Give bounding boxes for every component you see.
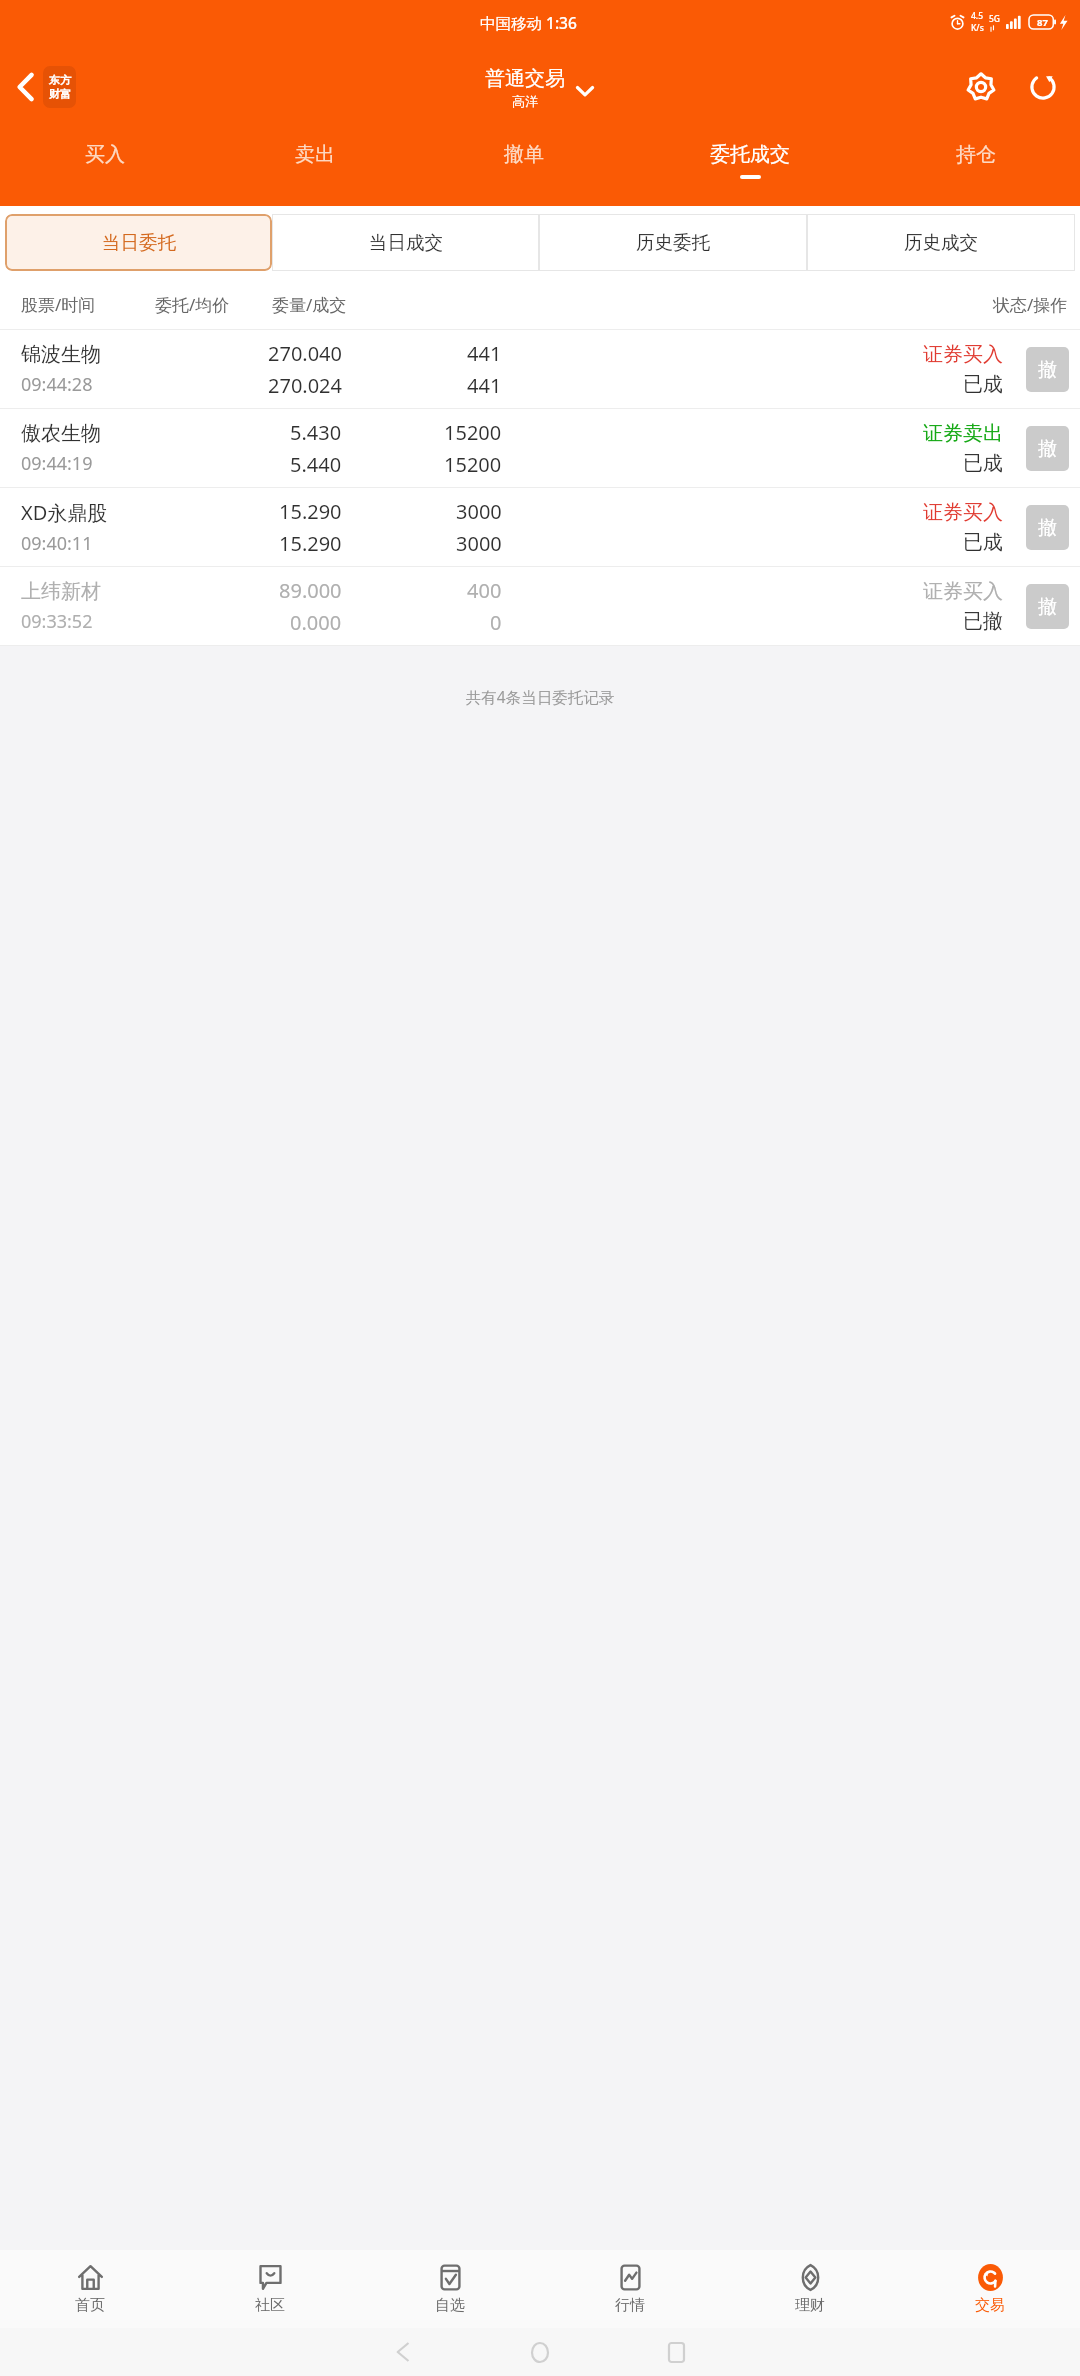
staticText: 普通交易: [485, 66, 565, 91]
staticText: XD永鼎股: [21, 499, 108, 526]
button[interactable]: 当日成交: [272, 214, 539, 271]
staticText: 3000: [456, 498, 502, 525]
button[interactable]: 历史委托: [539, 214, 807, 271]
button[interactable]: 买入: [0, 130, 210, 206]
staticText: 441: [467, 340, 502, 367]
staticText: K/s: [971, 22, 984, 34]
staticText: 行情: [615, 2296, 645, 2315]
staticText: 社区: [255, 2296, 285, 2315]
button[interactable]: 当日委托: [5, 214, 272, 271]
staticText: 证券卖出: [923, 421, 1003, 446]
button[interactable]: 上纬新材: [0, 567, 1080, 646]
staticText: 财富: [49, 87, 71, 101]
staticText: 自选: [435, 2296, 465, 2315]
staticText: 卖出: [295, 142, 335, 167]
staticText: 89.000: [279, 577, 342, 604]
staticText: 已撤: [963, 609, 1003, 634]
button[interactable]: 撤: [1026, 426, 1069, 471]
staticText: 5G: [989, 13, 1001, 25]
button[interactable]: 设置: [958, 64, 1004, 110]
staticText: 证券买入: [923, 342, 1003, 367]
staticText: 锦波生物: [21, 342, 101, 367]
staticText: 持仓: [956, 142, 996, 167]
staticText: 委托成交: [710, 142, 790, 167]
staticText: 上纬新材: [21, 579, 101, 604]
staticText: 5.440: [290, 451, 342, 478]
staticText: 15200: [444, 451, 502, 478]
staticText: 撤: [1038, 516, 1057, 540]
button[interactable]: 委托成交: [628, 130, 871, 206]
staticText: 4.5: [971, 10, 984, 22]
staticText: 87: [1037, 16, 1048, 29]
staticText: 09:33:52: [21, 609, 93, 634]
staticText: 当日成交: [369, 231, 443, 254]
staticText: 15.290: [279, 498, 342, 525]
button[interactable]: 返回: [372, 2328, 436, 2376]
button[interactable]: 交易: [900, 2250, 1080, 2328]
button[interactable]: 首页: [0, 2250, 180, 2328]
staticText: 股票/时间: [21, 293, 96, 316]
staticText: 东方: [49, 73, 71, 87]
button[interactable]: 撤: [1026, 347, 1069, 392]
staticText: 270.040: [268, 340, 342, 367]
staticText: 0: [490, 609, 502, 636]
button[interactable]: XD永鼎股: [0, 488, 1080, 567]
staticText: 历史委托: [636, 231, 710, 254]
staticText: 状态/操作: [993, 293, 1068, 316]
staticText: 撤: [1038, 437, 1057, 461]
staticText: 撤: [1038, 358, 1057, 382]
staticText: 中国移动 1:36: [480, 12, 577, 33]
staticText: 09:44:28: [21, 372, 93, 397]
button[interactable]: 历史成交: [807, 214, 1075, 271]
staticText: 理财: [795, 2296, 825, 2315]
staticText: 441: [467, 372, 502, 399]
staticText: 已成: [963, 451, 1003, 476]
staticText: 委托/均价: [155, 293, 230, 316]
button[interactable]: 持仓: [871, 130, 1080, 206]
button[interactable]: 社区: [180, 2250, 360, 2328]
staticText: 09:44:19: [21, 451, 93, 476]
staticText: 15200: [444, 419, 502, 446]
button[interactable]: 锦波生物: [0, 330, 1080, 409]
staticText: 5.430: [290, 419, 342, 446]
button[interactable]: 普通交易: [485, 66, 595, 109]
button[interactable]: 撤: [1026, 505, 1069, 550]
staticText: 400: [467, 577, 502, 604]
button[interactable]: 撤单: [419, 130, 628, 206]
button[interactable]: 最近任务: [644, 2328, 708, 2376]
staticText: 共有4条当日委托记录: [0, 686, 1080, 707]
staticText: 撤单: [504, 142, 544, 167]
staticText: 首页: [75, 2296, 105, 2315]
staticText: 高洋: [512, 93, 538, 109]
staticText: 3000: [456, 530, 502, 557]
button[interactable]: 自选: [360, 2250, 540, 2328]
staticText: 傲农生物: [21, 421, 101, 446]
button[interactable]: 主屏幕: [508, 2328, 572, 2376]
button[interactable]: 傲农生物: [0, 409, 1080, 488]
staticText: 已成: [963, 372, 1003, 397]
button[interactable]: 行情: [540, 2250, 720, 2328]
staticText: 270.024: [268, 372, 342, 399]
staticText: 证券买入: [923, 500, 1003, 525]
staticText: 09:40:11: [21, 531, 93, 556]
staticText: 买入: [85, 142, 125, 167]
staticText: 历史成交: [904, 231, 978, 254]
staticText: 当日委托: [102, 231, 176, 254]
button[interactable]: 刷新: [1020, 64, 1066, 110]
staticText: 证券买入: [923, 579, 1003, 604]
staticText: 15.290: [279, 530, 342, 557]
staticText: 已成: [963, 530, 1003, 555]
button[interactable]: 理财: [720, 2250, 900, 2328]
button[interactable]: 返回 东方财富: [10, 60, 82, 114]
staticText: 委量/成交: [272, 293, 347, 316]
staticText: 撤: [1038, 595, 1057, 619]
button[interactable]: 撤: [1026, 584, 1069, 629]
staticText: 交易: [975, 2296, 1005, 2315]
button[interactable]: 卖出: [210, 130, 419, 206]
staticText: 0.000: [290, 609, 342, 636]
